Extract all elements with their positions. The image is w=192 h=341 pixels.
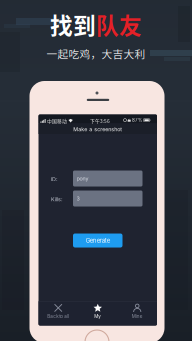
staticText: Mine bbox=[132, 314, 143, 319]
staticText: 中国移动 bbox=[47, 117, 67, 124]
staticText: 87% bbox=[132, 117, 142, 123]
staticText: 队友 bbox=[96, 8, 142, 41]
staticText: Make a screenshot bbox=[73, 126, 122, 132]
staticText: 找到 bbox=[50, 8, 96, 41]
staticText: 一起吃鸡，大吉大利 bbox=[46, 46, 145, 61]
staticText: Kills: bbox=[51, 196, 63, 202]
button[interactable]: Back to all bbox=[38, 300, 78, 327]
staticText: 下午3:56 bbox=[90, 117, 110, 124]
staticText: 3 bbox=[76, 195, 79, 202]
button[interactable]: Mine bbox=[117, 300, 157, 327]
staticText: Generate bbox=[86, 237, 110, 244]
staticText: ID: bbox=[51, 176, 58, 182]
button[interactable]: Generate bbox=[73, 233, 122, 247]
button[interactable]: My bbox=[78, 300, 117, 327]
staticText: Back to all bbox=[47, 314, 69, 319]
staticText: My bbox=[94, 314, 101, 319]
staticText: pony bbox=[76, 175, 88, 182]
